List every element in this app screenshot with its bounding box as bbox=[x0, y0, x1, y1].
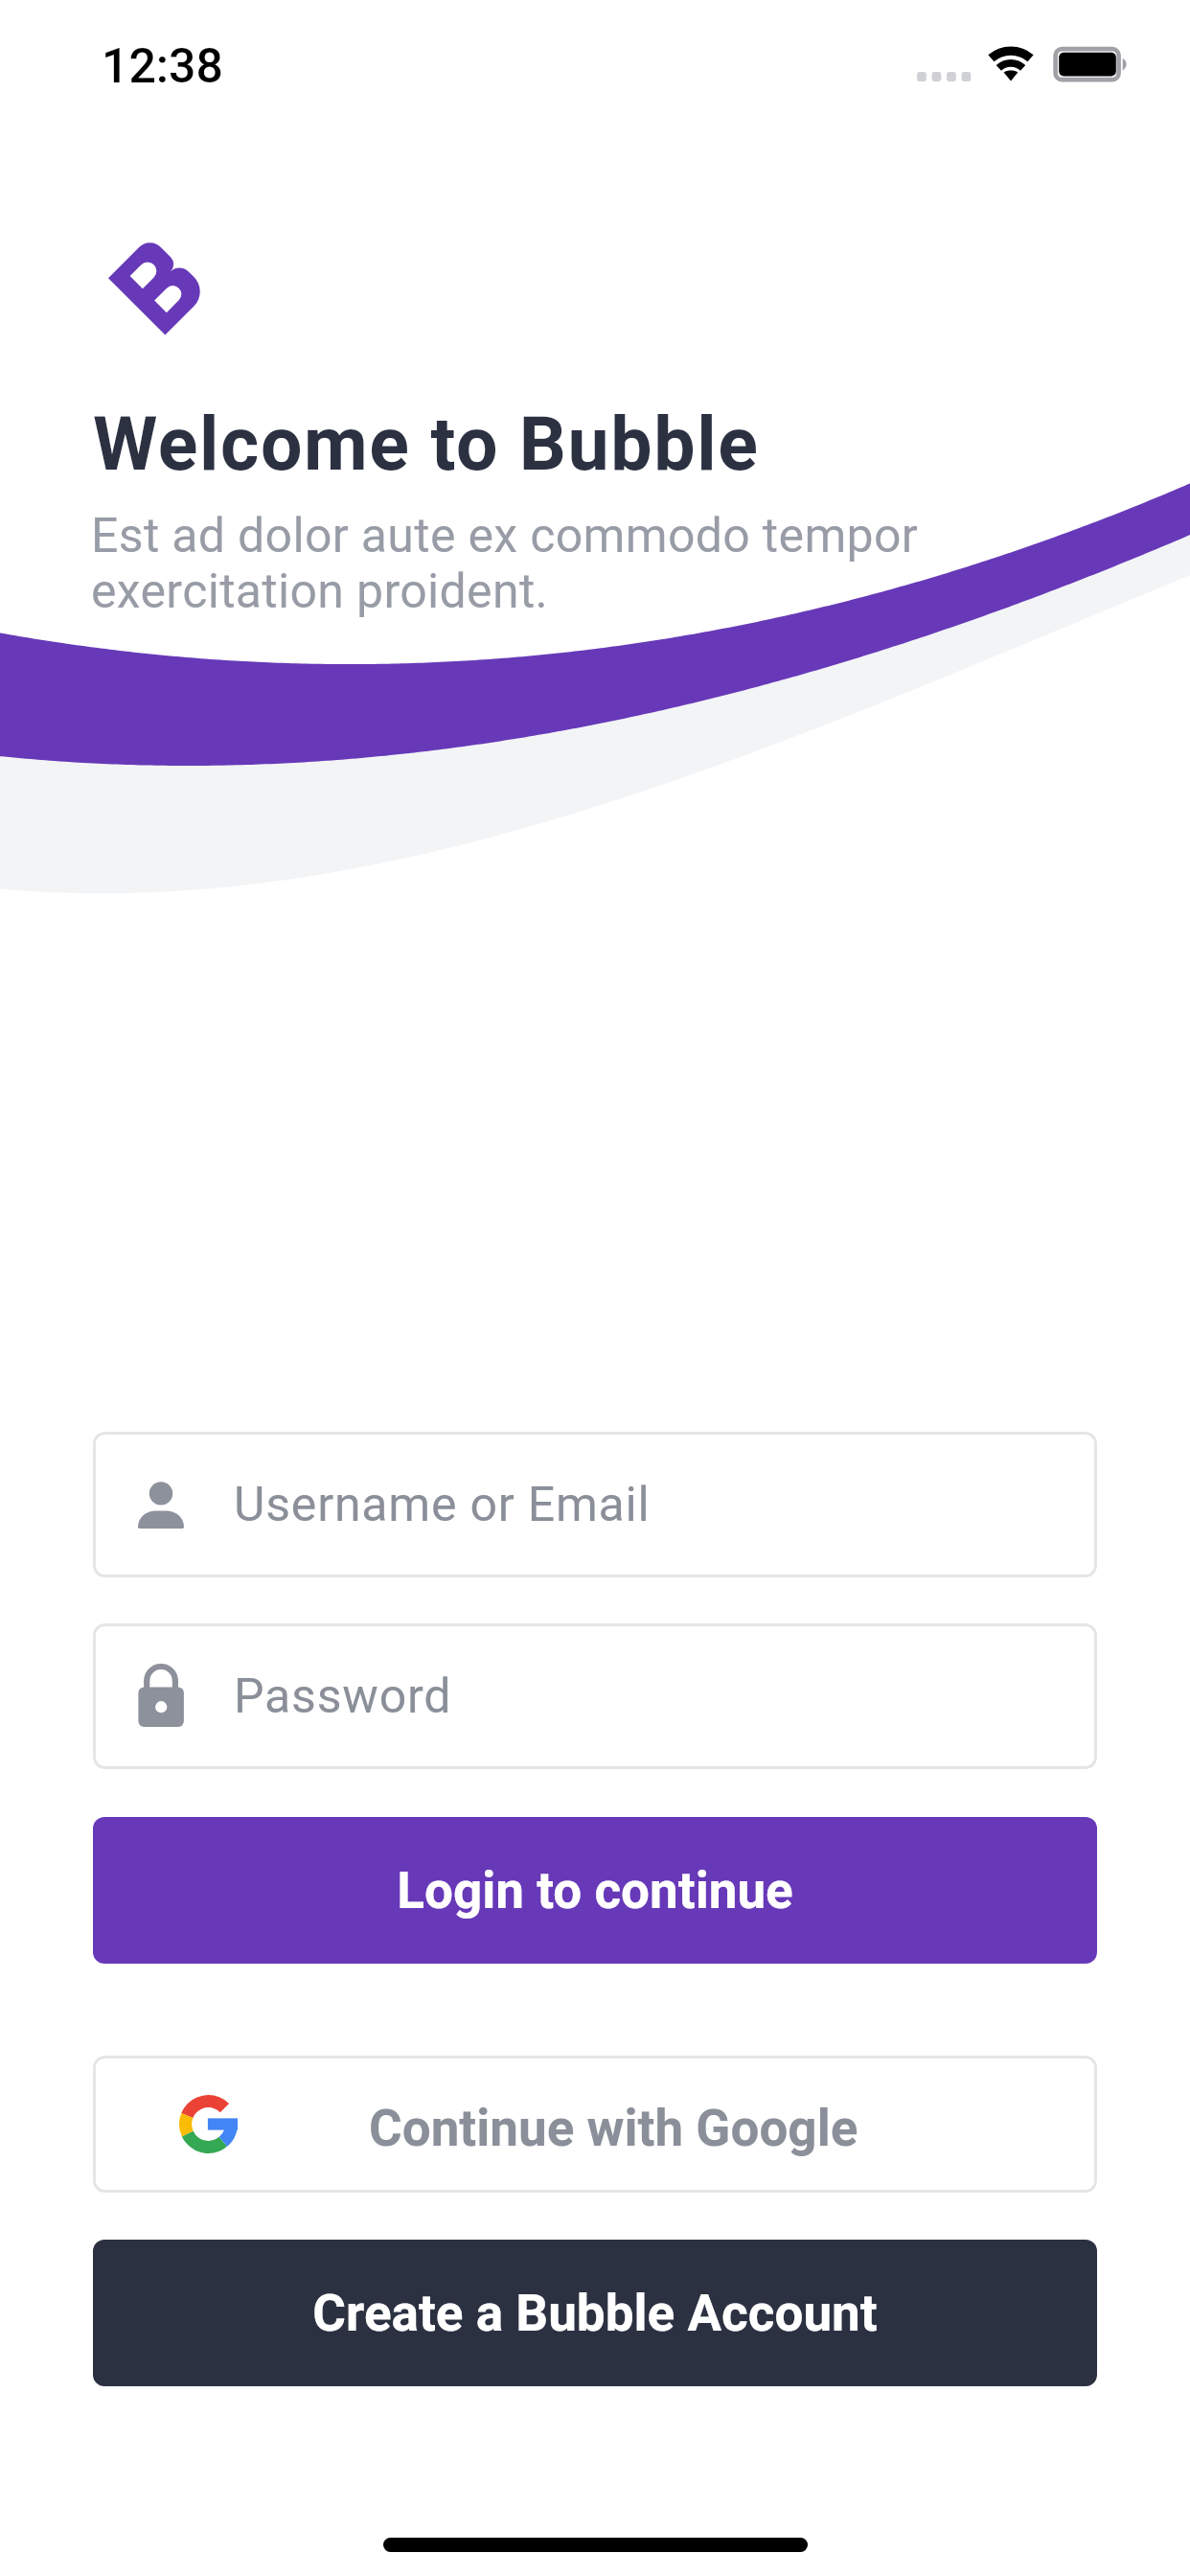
staticText: Username or Email bbox=[234, 1477, 651, 1533]
staticText: Create a Bubble Account bbox=[312, 2284, 878, 2343]
staticText: Welcome to Bubble bbox=[93, 402, 760, 488]
button[interactable]: Username or Email bbox=[93, 1432, 1097, 1577]
other: Signal, Wi-Fi and battery status bbox=[910, 38, 1140, 92]
staticText: Continue with Google bbox=[369, 2099, 858, 2158]
staticText: Password bbox=[234, 1668, 452, 1725]
staticText: Est ad dolor aute ex commodo tempor exer… bbox=[91, 508, 919, 619]
other: Bubble logo bbox=[108, 237, 214, 342]
other: Home indicator bbox=[383, 2538, 808, 2552]
button[interactable]: Login to continue bbox=[93, 1817, 1097, 1964]
button[interactable]: Continue with Google bbox=[93, 2056, 1097, 2193]
button[interactable]: Password bbox=[93, 1623, 1097, 1769]
staticText: Login to continue bbox=[397, 1861, 793, 1920]
button[interactable]: Create a Bubble Account bbox=[93, 2240, 1097, 2386]
staticText: 12:38 bbox=[102, 38, 223, 95]
